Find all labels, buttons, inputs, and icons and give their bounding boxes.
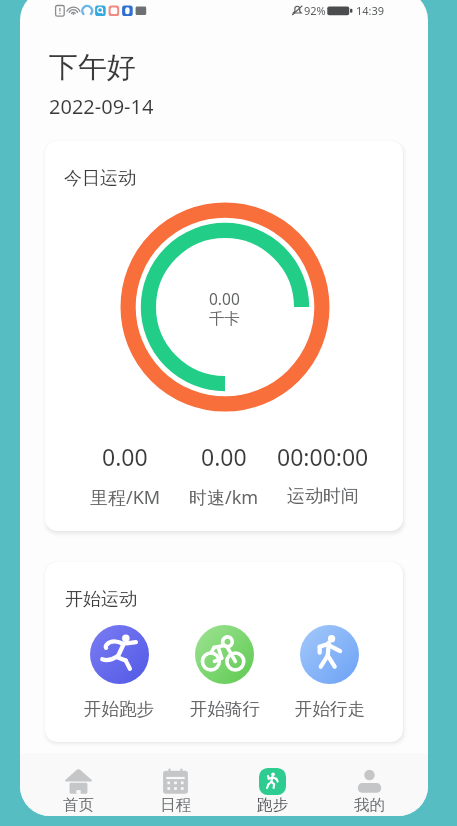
button[interactable]: 我的 — [321, 768, 418, 816]
staticText: 开始骑行 — [190, 698, 260, 720]
staticText: 下午好 — [49, 49, 136, 86]
button[interactable]: 开始跑步 — [66, 625, 172, 720]
staticText: 00:00:00 — [277, 441, 369, 472]
staticText: 首页 — [63, 795, 94, 815]
staticText: 日程 — [160, 795, 191, 815]
staticText: 时速/km — [189, 485, 259, 510]
button[interactable]: 首页 — [30, 768, 127, 816]
staticText: 运动时间 — [287, 485, 359, 508]
staticText: 我的 — [354, 795, 385, 815]
button[interactable]: 开始骑行 — [172, 625, 277, 720]
staticText: 千卡 — [209, 309, 240, 329]
button[interactable]: 日程 — [127, 768, 224, 816]
button[interactable]: 开始行走 — [277, 625, 382, 720]
staticText: 14:39 — [356, 3, 385, 18]
staticText: 0.00 — [209, 288, 240, 309]
button[interactable]: 跑步 — [224, 768, 321, 816]
staticText: 开始行走 — [295, 698, 365, 720]
staticText: 开始运动 — [65, 588, 137, 611]
staticText: 里程/KM — [90, 485, 161, 510]
staticText: 2022-09-14 — [49, 93, 154, 120]
staticText: 今日运动 — [64, 167, 136, 190]
staticText: 开始跑步 — [84, 698, 154, 720]
staticText: 92% — [304, 3, 326, 18]
staticText: 0.00 — [201, 441, 247, 472]
staticText: 跑步 — [257, 795, 288, 815]
staticText: 0.00 — [102, 441, 148, 472]
